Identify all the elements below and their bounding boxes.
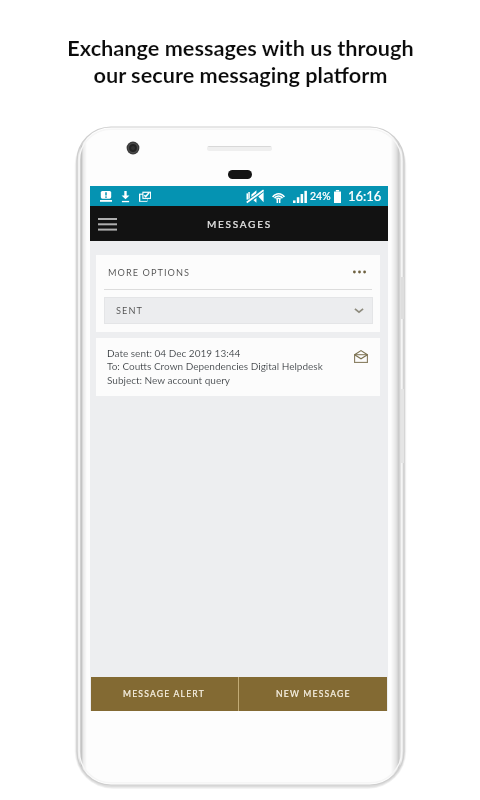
button[interactable]: NEW MESSAGE	[239, 677, 387, 711]
staticText: SENT	[116, 305, 143, 316]
staticText: 24%	[310, 190, 331, 203]
staticText: 16:16	[348, 188, 382, 204]
staticText: Exchange messages with us through our se…	[67, 35, 414, 88]
button[interactable]: Date sent: 04 Dec 2019 13:44 To: Coutts …	[96, 338, 380, 396]
button[interactable]: MESSAGE ALERT	[91, 677, 238, 711]
staticText: MESSAGES	[207, 218, 272, 230]
button[interactable]: MORE OPTIONS	[96, 255, 380, 289]
staticText: MORE OPTIONS	[108, 267, 191, 278]
staticText: NEW MESSAGE	[276, 689, 351, 699]
button[interactable]: Open navigation menu	[90, 206, 124, 241]
staticText: Date sent: 04 Dec 2019 13:44 To: Coutts …	[107, 347, 323, 386]
other: Open message	[352, 347, 370, 365]
button[interactable]: SENT	[104, 297, 373, 324]
staticText: MESSAGE ALERT	[123, 689, 206, 699]
